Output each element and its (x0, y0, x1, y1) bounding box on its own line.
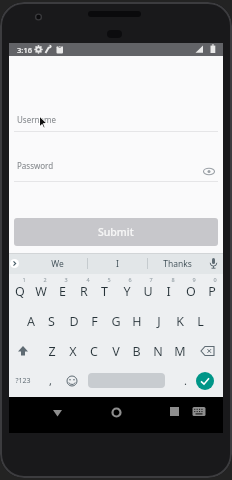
staticText: J (157, 313, 161, 330)
button[interactable]: K (169, 313, 190, 330)
staticText: 7 (149, 276, 153, 283)
button[interactable] (66, 375, 78, 387)
button[interactable]: I (87, 253, 147, 274)
staticText: 5 (107, 276, 111, 283)
staticText: O (186, 283, 196, 300)
button[interactable]: R (73, 283, 94, 300)
staticText: A (27, 313, 35, 330)
button[interactable] (10, 259, 19, 268)
staticText: , (49, 373, 52, 388)
button[interactable] (49, 405, 66, 421)
button[interactable]: U (137, 283, 158, 300)
staticText: Z (48, 343, 56, 360)
button[interactable]: M (169, 343, 190, 360)
button[interactable]: ?123 (12, 372, 34, 389)
button[interactable]: . (179, 372, 191, 389)
button[interactable]: V (105, 343, 126, 360)
button[interactable] (208, 257, 219, 270)
staticText: E (59, 283, 66, 300)
button[interactable]: X (62, 343, 83, 360)
staticText: X (69, 343, 77, 360)
button[interactable]: We (27, 253, 87, 274)
button[interactable]: F (84, 313, 105, 330)
button[interactable] (200, 345, 216, 357)
staticText: 4 (86, 276, 90, 283)
staticText: G (111, 313, 121, 330)
button[interactable]: Password (14, 154, 218, 182)
staticText: Submit (98, 225, 134, 239)
staticText: B (132, 343, 141, 360)
staticText: 9 (192, 276, 196, 283)
button[interactable]: Q (9, 283, 30, 300)
staticText: M (174, 343, 186, 360)
button[interactable] (108, 404, 125, 421)
staticText: ?123 (15, 376, 31, 386)
staticText: 0 (213, 276, 217, 283)
staticText: T (101, 283, 108, 300)
button[interactable]: P (201, 283, 222, 300)
staticText: 1 (22, 276, 26, 283)
button[interactable] (196, 372, 214, 390)
button[interactable]: O (180, 283, 201, 300)
button[interactable] (88, 373, 165, 388)
staticText: 8 (171, 276, 175, 283)
staticText: Thanks (163, 258, 192, 270)
button[interactable] (202, 166, 216, 177)
staticText: C (90, 343, 98, 360)
staticText: S (48, 313, 55, 330)
staticText: I (116, 258, 119, 270)
button[interactable]: A (20, 313, 41, 330)
button[interactable]: Z (41, 343, 62, 360)
staticText: W (35, 283, 47, 300)
staticText: Username (17, 114, 56, 125)
button[interactable]: I (158, 283, 179, 300)
button[interactable]: L (190, 313, 211, 330)
staticText: K (176, 313, 184, 330)
button[interactable]: T (94, 283, 115, 300)
staticText: Password (17, 160, 54, 171)
button[interactable] (16, 344, 30, 358)
button[interactable]: D (63, 313, 84, 330)
staticText: R (80, 283, 88, 300)
button[interactable]: E (52, 283, 73, 300)
button[interactable]: J (148, 313, 169, 330)
staticText: Y (123, 283, 131, 300)
button[interactable]: Y (116, 283, 137, 300)
staticText: Q (15, 283, 25, 300)
button[interactable]: , (44, 372, 56, 389)
staticText: V (112, 343, 120, 360)
button[interactable]: S (41, 313, 62, 330)
button[interactable]: G (105, 313, 126, 330)
button[interactable]: Submit (14, 218, 218, 246)
staticText: We (51, 258, 64, 270)
button[interactable]: W (30, 283, 51, 300)
button[interactable]: H (126, 313, 147, 330)
button[interactable]: N (147, 343, 168, 360)
staticText: 6 (128, 276, 132, 283)
button[interactable]: C (83, 343, 104, 360)
staticText: . (184, 373, 187, 388)
staticText: P (208, 283, 216, 300)
staticText: 2 (43, 276, 47, 283)
button[interactable]: Username (14, 108, 218, 132)
staticText: 3 (64, 276, 68, 283)
staticText: N (153, 343, 163, 360)
staticText: 3:16 (17, 45, 32, 55)
staticText: L (197, 313, 204, 330)
staticText: I (166, 283, 171, 300)
staticText: H (132, 313, 142, 330)
staticText: D (69, 313, 79, 330)
button[interactable]: Thanks (147, 253, 207, 274)
staticText: F (91, 313, 98, 330)
button[interactable]: B (126, 343, 147, 360)
button[interactable] (191, 405, 207, 418)
staticText: U (143, 283, 153, 300)
